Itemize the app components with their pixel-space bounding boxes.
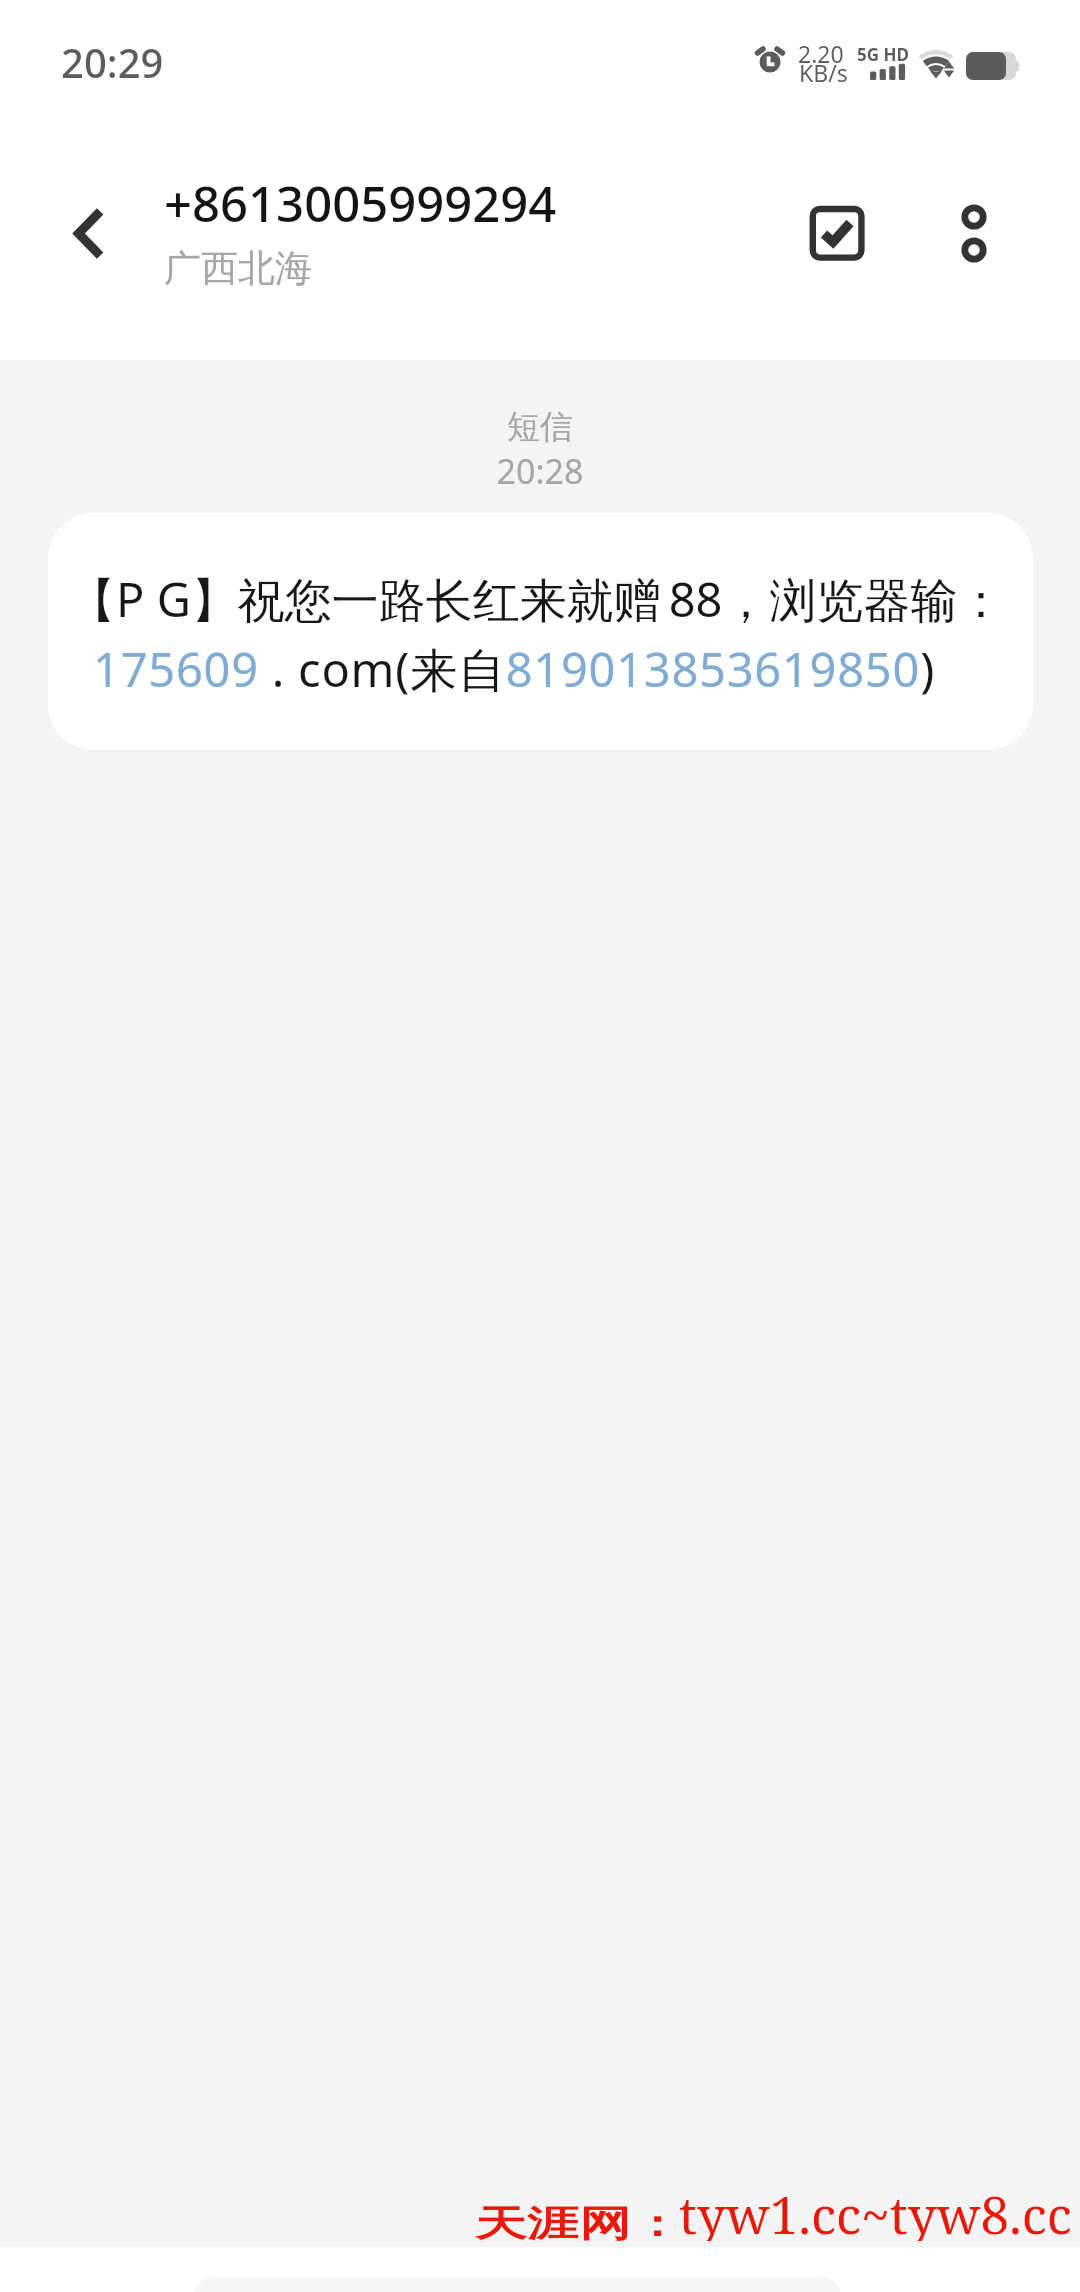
staticText: 2.20 (798, 38, 844, 69)
button[interactable]: More options (934, 197, 1014, 277)
staticText: 175609 . com(来自819013853619850) (93, 637, 935, 701)
staticText: tyw1.cc~tyw8.cc (679, 2179, 1072, 2241)
button[interactable]: 【P G】祝您一路长红来就赠 88，浏览器输： (48, 513, 1033, 750)
staticText: 【P G】祝您一路长红来就赠 88，浏览器输： (69, 567, 1005, 631)
button[interactable]: Back (38, 194, 128, 292)
staticText: 短信 (0, 406, 1080, 448)
staticText: +8613005999294 (164, 170, 557, 237)
button[interactable]: Select messages (797, 194, 877, 274)
staticText: 5G HD (857, 43, 909, 66)
staticText: 20:28 (0, 448, 1080, 494)
staticText: KB/s (799, 57, 848, 88)
staticText: 天涯网： (475, 2201, 683, 2244)
staticText: 广西北海 (164, 245, 312, 292)
staticText: 20:29 (61, 35, 164, 89)
